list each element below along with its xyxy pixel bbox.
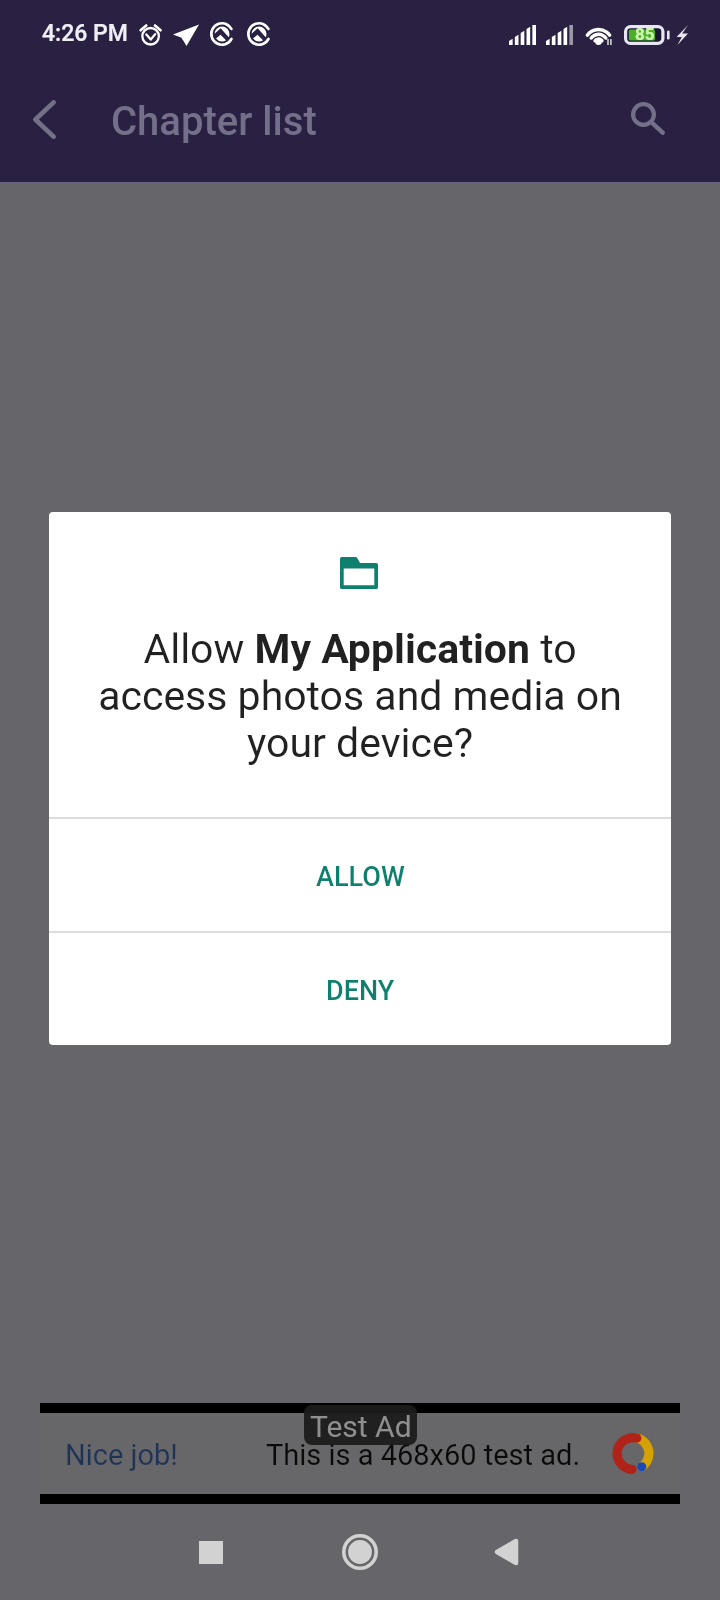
button[interactable]: Home bbox=[324, 1516, 396, 1588]
button[interactable]: DENY bbox=[49, 933, 671, 1045]
staticText: 4:26 PM bbox=[42, 20, 128, 47]
button[interactable]: Back bbox=[470, 1516, 542, 1588]
staticText: Allow My Application to access photos an… bbox=[87, 625, 633, 767]
staticText: Nice job! bbox=[65, 1438, 178, 1472]
staticText: DENY bbox=[326, 975, 395, 1007]
staticText: ALLOW bbox=[316, 861, 405, 893]
button[interactable]: ALLOW bbox=[49, 819, 671, 931]
button[interactable]: Navigate up bbox=[12, 87, 76, 151]
staticText: This is a 468x60 test ad. bbox=[266, 1438, 581, 1472]
staticText: Chapter list bbox=[111, 98, 317, 145]
button[interactable]: Recent apps bbox=[175, 1516, 247, 1588]
button[interactable]: Search bbox=[616, 86, 680, 150]
staticText: Test Ad bbox=[310, 1409, 412, 1444]
staticText: 85 bbox=[635, 24, 655, 44]
